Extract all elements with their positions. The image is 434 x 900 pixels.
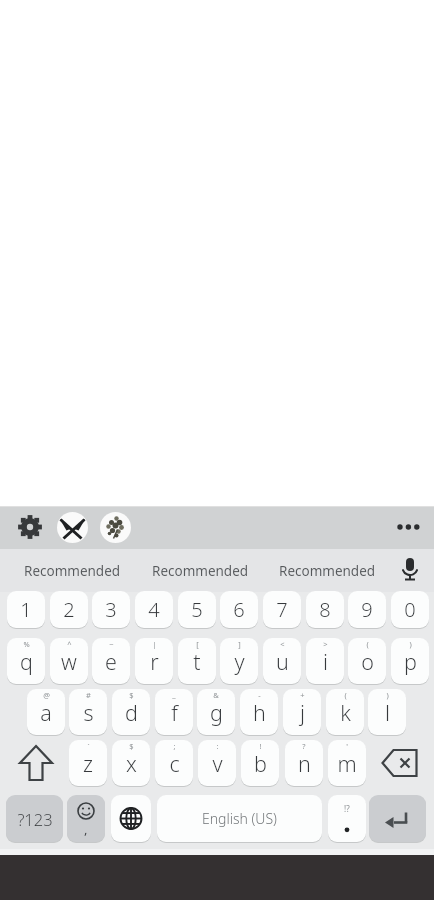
staticText: a xyxy=(40,698,52,727)
staticText: ` xyxy=(87,741,90,751)
button[interactable]: k xyxy=(326,689,364,735)
button[interactable] xyxy=(392,519,424,535)
staticText: 6 xyxy=(233,596,245,623)
button[interactable]: u xyxy=(263,638,301,684)
staticText: ! xyxy=(259,741,262,751)
button[interactable]: 4 xyxy=(135,591,173,628)
button[interactable]: m xyxy=(328,740,366,786)
staticText: [ xyxy=(196,639,199,649)
staticText: ; xyxy=(173,741,176,751)
staticText: ' xyxy=(346,741,348,751)
button[interactable] xyxy=(16,513,44,541)
button[interactable]: c xyxy=(155,740,193,786)
staticText: ? xyxy=(302,741,306,751)
button[interactable]: a xyxy=(27,689,65,735)
button[interactable]: s xyxy=(69,689,107,735)
button[interactable]: e xyxy=(92,638,130,684)
staticText: Recommended xyxy=(24,562,121,580)
button[interactable]: 0 xyxy=(391,591,429,628)
button[interactable]: Recommended xyxy=(12,549,132,592)
staticText: e xyxy=(105,647,117,676)
button[interactable]: 6 xyxy=(220,591,258,628)
button[interactable]: r xyxy=(135,638,173,684)
staticText: Recommended xyxy=(152,562,249,580)
button[interactable]: 2 xyxy=(50,591,88,628)
staticText: _ xyxy=(172,690,176,700)
staticText: 9 xyxy=(361,596,373,623)
button[interactable]: Recommended xyxy=(267,549,387,592)
button[interactable]: p xyxy=(391,638,429,684)
staticText: x xyxy=(126,749,137,778)
staticText: v xyxy=(212,749,223,778)
button[interactable]: x xyxy=(112,740,150,786)
staticText: + xyxy=(300,690,305,700)
button[interactable] xyxy=(111,795,151,842)
staticText: | xyxy=(152,639,157,649)
button[interactable]: g xyxy=(197,689,235,735)
button[interactable]: ?123 xyxy=(6,795,63,842)
staticText: 5 xyxy=(191,596,203,623)
button[interactable]: !? xyxy=(328,795,366,842)
button[interactable]: l xyxy=(368,689,406,735)
staticText: < xyxy=(280,639,285,649)
button[interactable]: 1 xyxy=(7,591,45,628)
staticText: h xyxy=(253,698,266,727)
button[interactable]: 3 xyxy=(92,591,130,628)
staticText: l xyxy=(385,698,390,727)
staticText: , xyxy=(84,820,88,838)
button[interactable]: 8 xyxy=(306,591,344,628)
staticText: n xyxy=(298,749,311,778)
button[interactable] xyxy=(372,740,429,786)
staticText: !? xyxy=(344,803,350,814)
button[interactable]: Recommended xyxy=(140,549,260,592)
button[interactable]: v xyxy=(198,740,236,786)
staticText: English (US) xyxy=(202,809,277,828)
staticText: c xyxy=(169,749,180,778)
staticText: r xyxy=(150,647,159,676)
button[interactable]: 9 xyxy=(348,591,386,628)
button[interactable]: , xyxy=(67,795,105,842)
button[interactable]: i xyxy=(306,638,344,684)
staticText: ) xyxy=(409,639,412,649)
button[interactable]: q xyxy=(7,638,45,684)
staticText: ] xyxy=(238,639,241,649)
staticText: q xyxy=(20,647,33,676)
button[interactable]: 5 xyxy=(178,591,216,628)
staticText: d xyxy=(125,698,138,727)
staticText: 0 xyxy=(404,596,416,623)
button[interactable]: d xyxy=(112,689,150,735)
staticText: j xyxy=(300,698,305,727)
button[interactable]: h xyxy=(240,689,278,735)
button[interactable]: n xyxy=(285,740,323,786)
staticText: Recommended xyxy=(279,562,376,580)
staticText: t xyxy=(193,647,201,676)
button[interactable]: y xyxy=(220,638,258,684)
button[interactable]: 7 xyxy=(263,591,301,628)
staticText: b xyxy=(254,749,267,778)
button[interactable]: j xyxy=(283,689,321,735)
staticText: 7 xyxy=(276,596,288,623)
button[interactable]: w xyxy=(50,638,88,684)
staticText: > xyxy=(323,639,328,649)
staticText: z xyxy=(83,749,93,778)
button[interactable] xyxy=(6,740,62,786)
button[interactable]: English (US) xyxy=(157,795,322,842)
button[interactable]: z xyxy=(69,740,107,786)
staticText: 2 xyxy=(63,596,75,623)
staticText: : xyxy=(216,741,219,751)
button[interactable] xyxy=(57,512,88,543)
staticText: p xyxy=(404,647,417,676)
button[interactable]: b xyxy=(241,740,279,786)
button[interactable] xyxy=(100,512,131,543)
button[interactable]: f xyxy=(155,689,193,735)
button[interactable]: o xyxy=(348,638,386,684)
staticText: 8 xyxy=(319,596,331,623)
button[interactable] xyxy=(369,795,426,842)
staticText: ?123 xyxy=(17,808,53,830)
staticText: f xyxy=(171,698,178,727)
staticText: - xyxy=(258,690,261,700)
button[interactable]: t xyxy=(178,638,216,684)
staticText: 1 xyxy=(20,596,32,623)
staticText: & xyxy=(213,690,219,700)
button[interactable] xyxy=(396,552,424,588)
